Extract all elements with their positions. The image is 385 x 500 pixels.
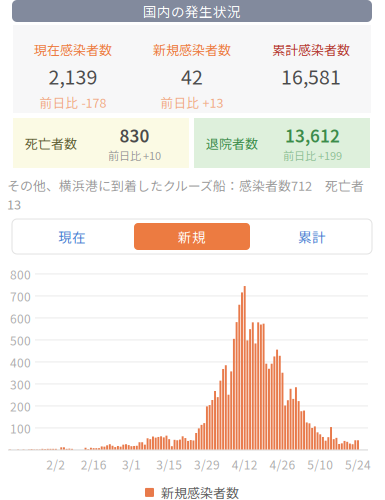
staticText: 200: [10, 397, 31, 415]
staticText: 5/10: [307, 455, 333, 473]
staticText: 3/1: [122, 455, 141, 473]
staticText: 4/26: [269, 455, 295, 473]
staticText: 新規感染者数: [153, 40, 231, 59]
staticText: 400: [10, 353, 31, 371]
staticText: 累計: [298, 227, 326, 246]
staticText: 700: [10, 287, 31, 305]
staticText: 前日比 +10: [108, 147, 161, 163]
staticText: 600: [10, 309, 31, 327]
staticText: 国内の発生状況: [143, 1, 241, 21]
staticText: 新規感染者数: [161, 483, 239, 500]
staticText: 死亡者数: [25, 134, 77, 152]
staticText: 42: [181, 62, 203, 90]
button[interactable]: 新規: [132, 219, 252, 254]
staticText: 2/16: [81, 455, 107, 473]
staticText: 13,612: [285, 123, 340, 147]
staticText: 3/15: [156, 455, 182, 473]
staticText: 5/24: [345, 455, 371, 473]
button[interactable]: 累計: [252, 219, 372, 254]
staticText: 前日比 -178: [39, 93, 106, 111]
staticText: 4/12: [232, 455, 258, 473]
staticText: 2/2: [46, 455, 65, 473]
staticText: 新規: [178, 227, 206, 246]
staticText: 500: [10, 331, 31, 349]
staticText: 300: [10, 375, 31, 393]
staticText: 800: [10, 265, 31, 283]
staticText: 16,581: [281, 62, 341, 90]
staticText: 100: [10, 419, 31, 437]
staticText: 累計感染者数: [272, 40, 350, 59]
staticText: 現在: [58, 227, 86, 246]
staticText: 2,139: [48, 62, 97, 90]
staticText: 前日比 +13: [160, 93, 223, 111]
staticText: 830: [119, 123, 149, 147]
staticText: その他、横浜港に到着したクルーズ船：感染者数712 死亡者13: [7, 176, 364, 213]
staticText: 現在感染者数: [34, 40, 112, 59]
staticText: 退院者数: [206, 134, 258, 152]
staticText: 3/29: [194, 455, 220, 473]
staticText: 前日比 +199: [283, 147, 342, 163]
button[interactable]: 現在: [12, 219, 132, 254]
